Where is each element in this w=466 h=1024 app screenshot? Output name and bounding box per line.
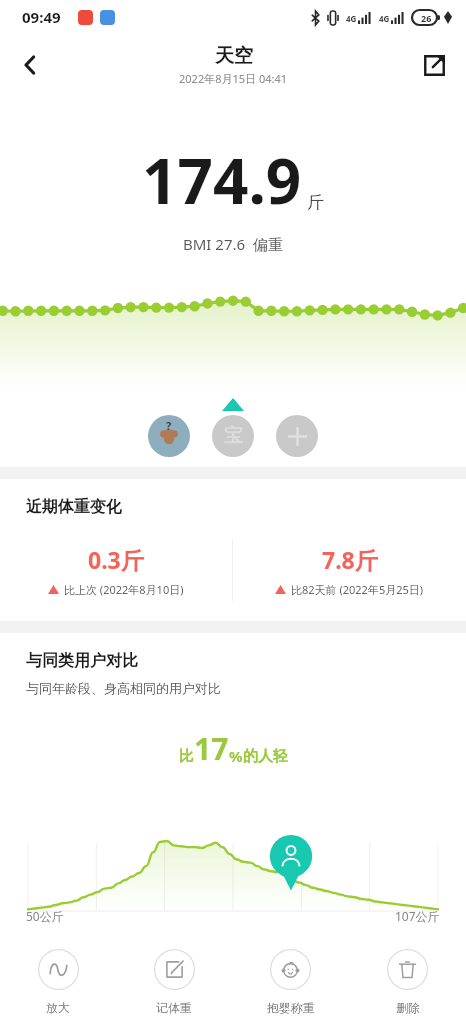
- staticText: 107公斤: [395, 908, 440, 924]
- staticText: 2022年8月15日 04:41: [179, 71, 288, 86]
- button[interactable]: 抱婴称重: [232, 940, 349, 1024]
- staticText: 4G: [379, 13, 390, 24]
- staticText: BMI 27.6 偏重: [183, 234, 283, 254]
- button[interactable]: Back: [6, 41, 54, 89]
- staticText: ?: [166, 418, 172, 433]
- staticText: 7.8斤: [322, 544, 378, 575]
- staticText: 天空: [215, 44, 253, 68]
- staticText: 0.3斤: [88, 544, 144, 575]
- button[interactable]: User 天空: [148, 415, 190, 457]
- button[interactable]: 放大: [0, 940, 116, 1024]
- staticText: 比: [179, 747, 194, 766]
- staticText: 删除: [396, 1000, 420, 1015]
- button[interactable]: Add user: [276, 415, 318, 457]
- staticText: 与同类用户对比: [26, 651, 138, 671]
- staticText: 宝: [224, 424, 243, 448]
- staticText: 放大: [46, 1000, 70, 1015]
- staticText: 的人轻: [243, 747, 288, 766]
- staticText: 与同年龄段、身高相同的用户对比: [26, 680, 221, 696]
- button[interactable]: Share: [410, 41, 458, 89]
- staticText: 174.9: [142, 138, 302, 222]
- button[interactable]: 宝: [212, 415, 254, 457]
- button[interactable]: 删除: [349, 940, 466, 1024]
- staticText: 比82天前 (2022年5月25日): [291, 582, 424, 597]
- staticText: 比上次 (2022年8月10日): [64, 582, 184, 597]
- staticText: 抱婴称重: [267, 1000, 315, 1015]
- staticText: 4G: [346, 13, 357, 24]
- staticText: 09:49: [22, 7, 61, 27]
- staticText: 记体重: [156, 1000, 192, 1015]
- staticText: 50公斤: [26, 908, 64, 924]
- staticText: %: [229, 746, 243, 766]
- staticText: 近期体重变化: [26, 497, 122, 517]
- staticText: 17: [194, 728, 229, 769]
- button[interactable]: 记体重: [116, 940, 232, 1024]
- staticText: 斤: [307, 192, 324, 213]
- staticText: 26: [421, 12, 432, 24]
